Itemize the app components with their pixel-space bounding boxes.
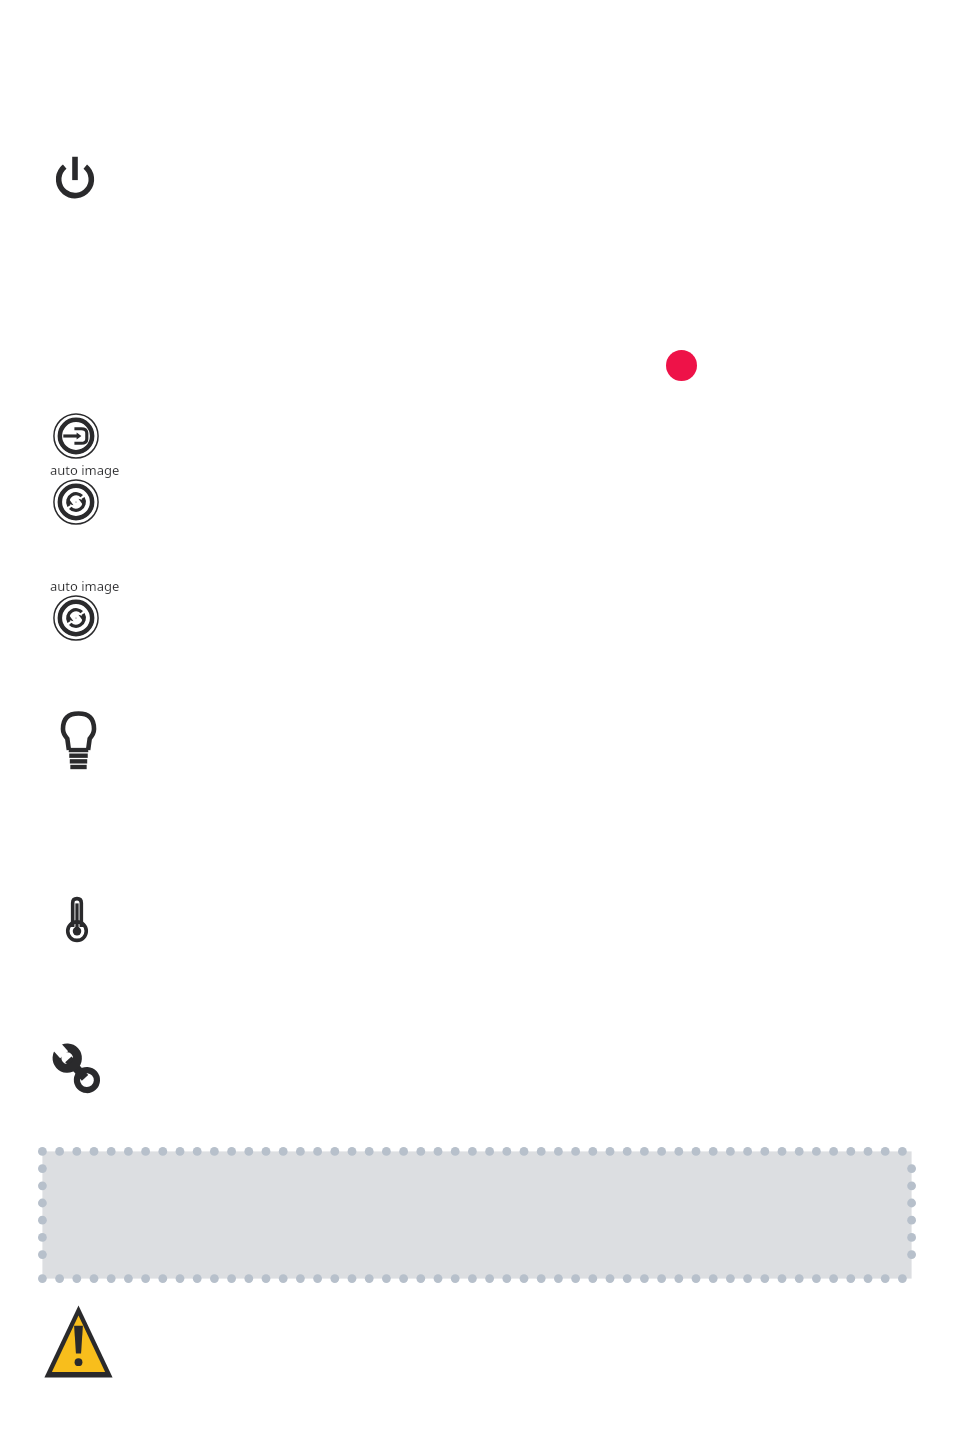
button[interactable]: Auto image xyxy=(53,595,99,641)
button[interactable]: Service xyxy=(52,1044,102,1094)
button[interactable]: Auto image xyxy=(53,479,99,525)
button[interactable]: Temperature xyxy=(61,896,93,944)
button[interactable]: Power xyxy=(52,142,98,208)
staticText: auto image xyxy=(50,461,120,479)
other: Status indicator xyxy=(666,350,697,381)
button[interactable]: Source xyxy=(53,413,99,459)
button[interactable]: Brightness xyxy=(56,707,101,777)
other: Warning xyxy=(43,1304,114,1379)
staticText: auto image xyxy=(50,577,120,595)
